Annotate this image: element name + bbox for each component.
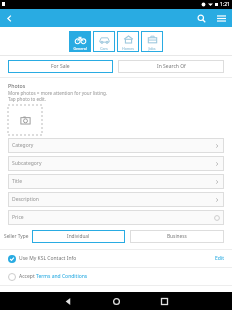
button[interactable]: Price [8, 210, 224, 225]
button[interactable]: Search [194, 11, 208, 25]
staticText: Homes [122, 46, 134, 51]
button[interactable]: Title [8, 174, 224, 189]
staticText: More photos = more attention for your li… [8, 90, 108, 96]
staticText: General [73, 46, 87, 51]
button[interactable]: Home [101, 292, 131, 310]
button[interactable]: Recent apps [149, 292, 179, 310]
button[interactable]: Add photo [8, 105, 42, 135]
staticText: Subcategory [12, 160, 214, 167]
button[interactable]: Description [8, 192, 224, 207]
button[interactable]: Business [130, 230, 224, 243]
staticText: Tap photo to edit. [8, 96, 46, 102]
staticText: In Search Of [157, 63, 186, 70]
staticText: Use My KSL Contact Info [19, 255, 215, 262]
button[interactable]: Homes [117, 31, 139, 52]
staticText: Price [12, 214, 214, 221]
staticText: Business [167, 233, 187, 240]
button[interactable]: Cars [93, 31, 115, 52]
button[interactable]: In Search Of [118, 60, 224, 73]
button[interactable]: Terms and Conditions [36, 273, 88, 280]
button[interactable]: General [69, 31, 91, 52]
button[interactable]: Accept [0, 268, 232, 285]
staticText: Photos [8, 82, 26, 89]
staticText: Category [12, 142, 214, 149]
button[interactable]: Category [8, 138, 224, 153]
button[interactable]: Back [0, 9, 18, 27]
staticText: Title [12, 178, 214, 185]
staticText: Seller Type [4, 233, 29, 240]
staticText: Description [12, 196, 214, 203]
staticText: Cars [100, 46, 108, 51]
button[interactable]: For Sale [8, 60, 113, 73]
button[interactable]: Use My KSL Contact Info [0, 250, 232, 267]
staticText: For Sale [51, 63, 70, 70]
button[interactable]: Edit [215, 255, 224, 262]
button[interactable]: Subcategory [8, 156, 224, 171]
button[interactable]: Back [53, 292, 83, 310]
button[interactable]: Menu [214, 11, 228, 25]
staticText: Jobs [148, 46, 156, 51]
staticText: Individual [67, 233, 90, 240]
button[interactable]: Jobs [141, 31, 163, 52]
staticText: 1:21 [220, 1, 230, 8]
button[interactable]: Individual [32, 230, 125, 243]
staticText: Accept [19, 273, 36, 280]
